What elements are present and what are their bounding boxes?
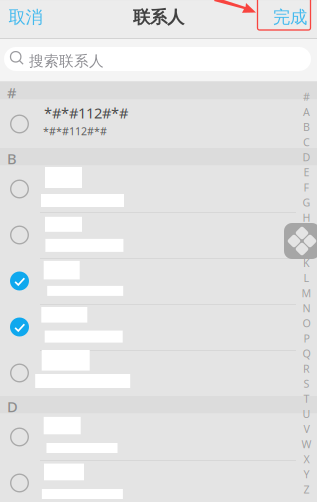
staticText: Y: [303, 467, 309, 481]
button[interactable]: [0, 212, 317, 258]
button[interactable]: [0, 304, 317, 350]
staticText: K: [303, 256, 310, 270]
staticText: 搜索联系人: [29, 52, 104, 70]
staticText: B: [303, 120, 310, 134]
button[interactable]: [0, 166, 317, 212]
staticText: P: [303, 331, 309, 345]
staticText: F: [303, 180, 309, 194]
staticText: D: [7, 397, 18, 416]
staticText: G: [302, 195, 310, 209]
staticText: V: [303, 422, 309, 436]
staticText: #: [7, 83, 16, 102]
staticText: 联系人: [133, 7, 184, 28]
staticText: N: [302, 301, 310, 315]
button[interactable]: 搜索联系人: [4, 47, 311, 71]
staticText: L: [303, 271, 309, 285]
staticText: M: [301, 286, 311, 300]
staticText: X: [303, 452, 309, 466]
staticText: *#*#112#*#: [43, 124, 107, 138]
staticText: 完成: [273, 7, 307, 28]
staticText: R: [303, 361, 310, 376]
staticText: 取消: [8, 7, 42, 28]
staticText: #: [303, 90, 310, 104]
staticText: J: [305, 241, 308, 255]
staticText: I: [304, 225, 308, 240]
staticText: E: [303, 165, 309, 179]
staticText: B: [7, 149, 17, 168]
staticText: W: [301, 437, 311, 451]
button[interactable]: [0, 350, 317, 396]
staticText: Q: [302, 346, 310, 360]
staticText: T: [303, 392, 309, 406]
button[interactable]: 取消: [3, 0, 47, 36]
button[interactable]: Alphabet index: [299, 89, 314, 497]
staticText: S: [303, 376, 309, 391]
staticText: D: [302, 150, 310, 164]
staticText: U: [302, 407, 310, 421]
staticText: *#*#112#*#: [44, 103, 128, 122]
button[interactable]: [0, 460, 317, 502]
button[interactable]: AssistiveTouch: [284, 223, 317, 259]
button[interactable]: [0, 414, 317, 460]
button[interactable]: [0, 258, 317, 304]
staticText: O: [302, 316, 310, 330]
staticText: Z: [303, 482, 309, 496]
button[interactable]: *#*#112#*#: [0, 100, 317, 148]
button[interactable]: 完成: [268, 0, 312, 36]
staticText: H: [302, 210, 310, 225]
staticText: C: [303, 135, 310, 149]
staticText: A: [303, 105, 310, 119]
